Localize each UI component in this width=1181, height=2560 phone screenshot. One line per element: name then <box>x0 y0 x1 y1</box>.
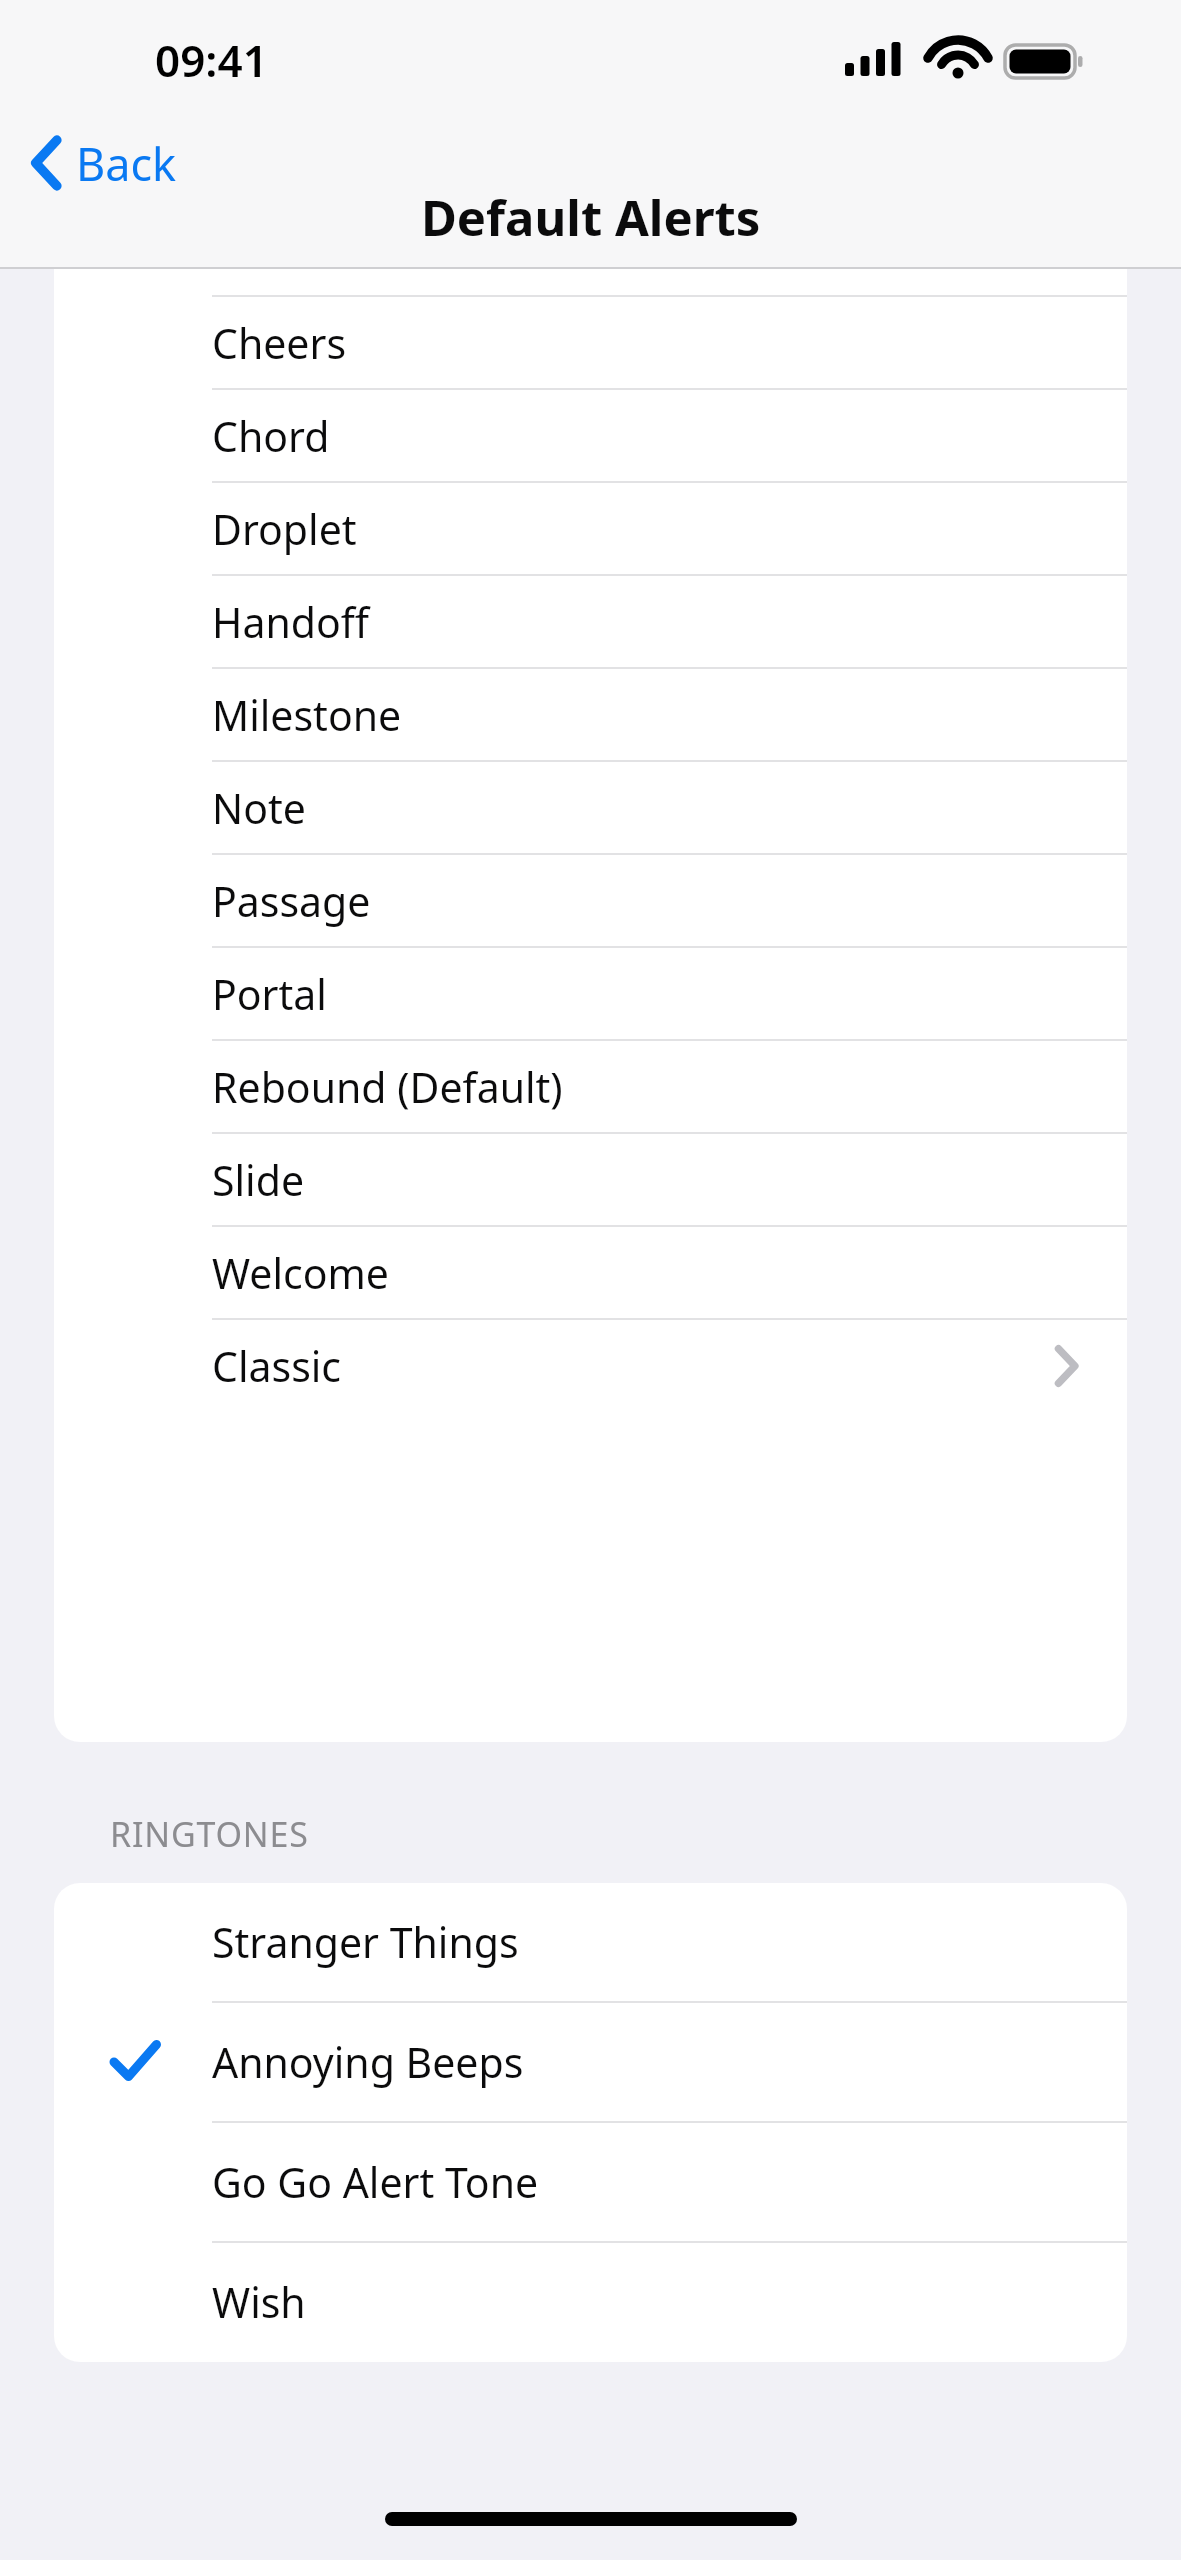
staticText: RINGTONES <box>110 1811 309 1857</box>
staticText: Slide <box>212 1152 305 1208</box>
button[interactable]: Droplet <box>54 483 1127 574</box>
staticText: Annoying Beeps <box>212 2034 524 2090</box>
button[interactable]: Stranger Things <box>54 1883 1127 2001</box>
button[interactable]: Passage <box>54 855 1127 946</box>
staticText: Back <box>76 133 177 194</box>
button[interactable]: Rebound (Default) <box>54 1041 1127 1132</box>
staticText: Welcome <box>212 1245 389 1301</box>
staticText: Portal <box>212 966 327 1022</box>
button[interactable]: Milestone <box>54 669 1127 760</box>
staticText: Go Go Alert Tone <box>212 2154 539 2210</box>
button[interactable]: Welcome <box>54 1227 1127 1318</box>
staticText: Classic <box>212 1338 342 1394</box>
other: Selected <box>110 2037 160 2087</box>
staticText: Droplet <box>212 501 357 557</box>
button[interactable]: Slide <box>54 1134 1127 1225</box>
staticText: Handoff <box>212 594 369 650</box>
staticText: Wish <box>212 2274 306 2330</box>
other: More <box>1056 1348 1077 1384</box>
button[interactable]: Back <box>0 163 201 259</box>
staticText: Milestone <box>212 687 402 743</box>
staticText: Chord <box>212 408 330 464</box>
button[interactable]: Note <box>54 762 1127 853</box>
button[interactable]: Chord <box>54 390 1127 481</box>
staticText: Default Alerts <box>421 184 761 251</box>
staticText: Note <box>212 780 306 836</box>
staticText: Passage <box>212 873 371 929</box>
staticText: Stranger Things <box>212 1914 519 1970</box>
button[interactable]: Handoff <box>54 576 1127 667</box>
button[interactable]: Go Go Alert Tone <box>54 2123 1127 2241</box>
staticText: Cheers <box>212 315 347 371</box>
button[interactable]: Portal <box>54 948 1127 1039</box>
button[interactable]: Wish <box>54 2243 1127 2361</box>
staticText: Rebound (Default) <box>212 1059 563 1115</box>
staticText: 09:41 <box>155 30 268 90</box>
button[interactable]: Cheers <box>54 297 1127 388</box>
button[interactable]: Classic <box>54 1320 1127 1411</box>
button[interactable]: Selected <box>54 2003 1127 2121</box>
